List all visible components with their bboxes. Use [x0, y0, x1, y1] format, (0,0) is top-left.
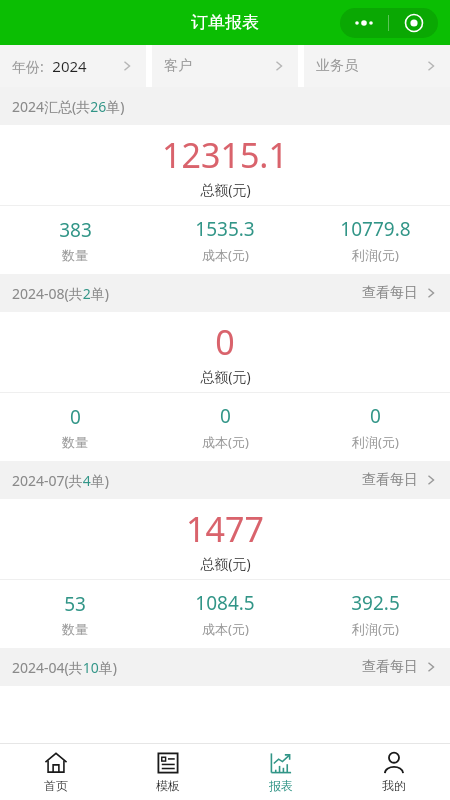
staticText: 数量 — [62, 434, 88, 450]
staticText: 53 — [64, 591, 86, 617]
staticText: 10779.8 — [340, 216, 411, 242]
staticText: 客户 — [164, 57, 192, 75]
staticText: 订单报表 — [191, 12, 259, 33]
staticText: 查看每日 — [362, 471, 418, 489]
staticText: 数量 — [62, 247, 88, 263]
staticText: 总额(元) — [200, 367, 251, 386]
staticText: 总额(元) — [200, 180, 251, 199]
button[interactable]: 2024汇总(共26单) — [0, 87, 450, 125]
staticText: 查看每日 — [362, 284, 418, 302]
staticText: 0 — [215, 319, 235, 365]
button[interactable]: 业务员 — [304, 45, 450, 87]
staticText: 2024-07(共4单) — [12, 471, 109, 490]
button[interactable]: 客户 — [152, 45, 298, 87]
staticText: 我的 — [382, 778, 406, 793]
button[interactable]: 2024-04(共10单) — [0, 648, 450, 686]
button[interactable]: 模板 — [112, 744, 224, 800]
button[interactable]: 我的 — [337, 744, 450, 800]
staticText: 392.5 — [351, 590, 400, 616]
staticText: 2024汇总(共26单) — [12, 97, 125, 116]
staticText: 2024 — [52, 56, 87, 76]
staticText: 成本(元) — [202, 433, 249, 451]
staticText: 业务员 — [316, 57, 358, 75]
staticText: 1535.3 — [195, 216, 255, 242]
staticText: 2024-04(共10单) — [12, 658, 117, 677]
button[interactable]: 2024-08(共2单) — [0, 274, 450, 312]
staticText: 0 — [220, 403, 231, 429]
button[interactable]: Mini program menu — [340, 8, 438, 38]
staticText: 利润(元) — [352, 433, 399, 451]
staticText: 2024-08(共2单) — [12, 284, 109, 303]
staticText: 0 — [370, 403, 381, 429]
staticText: 成本(元) — [202, 620, 249, 638]
staticText: 1084.5 — [195, 590, 255, 616]
button[interactable]: 2024-07(共4单) — [0, 461, 450, 499]
staticText: 0 — [70, 404, 81, 430]
staticText: 报表 — [269, 778, 293, 793]
staticText: 1477 — [186, 506, 264, 552]
button[interactable]: 报表 — [224, 744, 337, 800]
staticText: 首页 — [44, 778, 68, 793]
staticText: 12315.1 — [162, 132, 288, 178]
staticText: 利润(元) — [352, 246, 399, 264]
staticText: 利润(元) — [352, 620, 399, 638]
button[interactable]: 首页 — [0, 744, 112, 800]
staticText: 总额(元) — [200, 554, 251, 573]
staticText: 查看每日 — [362, 658, 418, 676]
staticText: 383 — [59, 217, 92, 243]
staticText: 年份: — [12, 57, 44, 76]
button[interactable]: 年份: — [0, 45, 146, 87]
staticText: 模板 — [156, 778, 180, 793]
staticText: 成本(元) — [202, 246, 249, 264]
staticText: 数量 — [62, 621, 88, 637]
